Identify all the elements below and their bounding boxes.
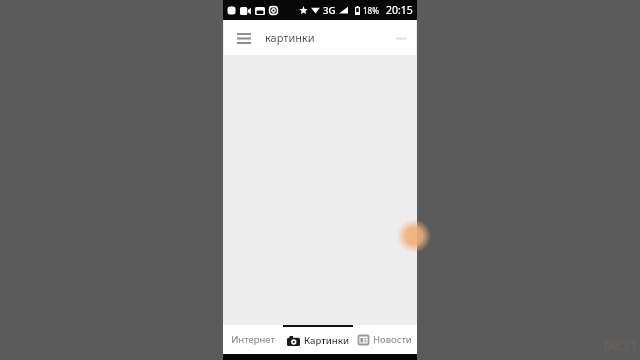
other: News [358,335,369,345]
button[interactable]: News [353,325,417,354]
button[interactable]: Menu [233,27,255,49]
staticText: 3G [323,4,336,17]
staticText: Картинки [304,334,350,347]
button[interactable]: Clear [392,29,410,47]
staticText: картинки [265,30,315,45]
staticText: 00:31 [604,336,638,354]
staticText: Интернет [231,333,275,346]
staticText: 18% [363,5,379,16]
button[interactable]: Menu [224,20,416,55]
button[interactable]: Images [283,325,353,354]
other: Images [287,336,300,346]
button[interactable]: Интернет [223,325,283,354]
staticText: 20:15 [386,3,413,17]
staticText: Новости [373,333,412,346]
